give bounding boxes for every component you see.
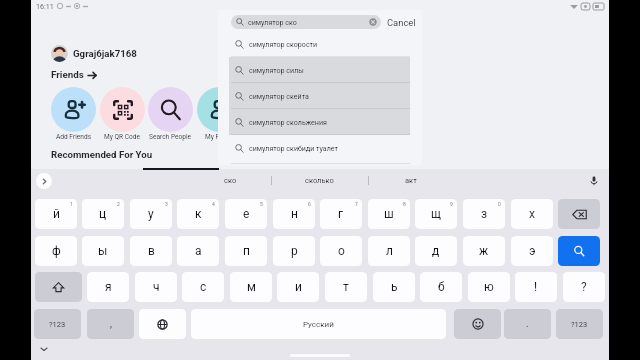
staticText: ф: [52, 244, 61, 258]
button[interactable]: а: [177, 236, 219, 266]
staticText: ш: [384, 207, 394, 221]
staticText: р: [291, 244, 298, 258]
button[interactable]: т: [325, 272, 367, 302]
staticText: симулятор силы: [249, 66, 304, 74]
staticText: 2: [117, 201, 120, 207]
button[interactable]: ,: [87, 309, 134, 339]
button[interactable]: ю: [468, 272, 510, 302]
button[interactable]: Search People: [148, 87, 193, 141]
button[interactable]: My Profile: [197, 87, 242, 141]
staticText: е: [243, 207, 250, 221]
staticText: Search People: [149, 133, 192, 141]
staticText: в: [148, 244, 155, 258]
staticText: 5: [260, 201, 263, 207]
staticText: 16:11: [36, 2, 54, 10]
button[interactable]: Emoji: [454, 309, 501, 339]
button[interactable]: акт: [376, 169, 446, 192]
staticText: ?123: [49, 320, 66, 329]
staticText: г: [338, 207, 344, 221]
staticText: 8: [403, 201, 406, 207]
button[interactable]: в: [130, 236, 172, 266]
button[interactable]: е: [225, 199, 267, 229]
staticText: симулятор скибиди туалет: [249, 144, 338, 152]
button[interactable]: симулятор скорости: [229, 31, 410, 57]
button[interactable]: Ggraj6jak7168: [51, 45, 137, 62]
button[interactable]: о: [320, 236, 362, 266]
staticText: х: [529, 207, 535, 221]
staticText: 9: [450, 201, 453, 207]
staticText: ч: [153, 280, 160, 294]
button[interactable]: к: [177, 199, 219, 229]
button[interactable]: ь: [373, 272, 415, 302]
staticText: я: [105, 280, 112, 294]
staticText: щ: [431, 207, 441, 221]
button[interactable]: симулятор скейта: [229, 83, 410, 109]
button[interactable]: я: [87, 272, 129, 302]
button[interactable]: д: [415, 236, 457, 266]
staticText: н: [291, 207, 298, 221]
button[interactable]: щ: [415, 199, 457, 229]
button[interactable]: My QR Code: [100, 87, 145, 141]
button[interactable]: й: [35, 199, 77, 229]
button[interactable]: ы: [82, 236, 124, 266]
button[interactable]: .: [504, 309, 551, 339]
button[interactable]: Hide keyboard: [36, 341, 52, 357]
button[interactable]: !: [515, 272, 557, 302]
button[interactable]: с: [182, 272, 224, 302]
staticText: и: [295, 280, 302, 294]
button[interactable]: г: [320, 199, 362, 229]
staticText: с: [200, 280, 207, 294]
staticText: у: [148, 207, 154, 221]
staticText: .: [526, 318, 529, 330]
staticText: Friends: [51, 69, 84, 80]
button[interactable]: ж: [463, 236, 505, 266]
staticText: ,: [110, 318, 112, 330]
button[interactable]: Expand toolbar: [36, 173, 52, 189]
button[interactable]: симулятор ско: [236, 15, 377, 29]
button[interactable]: ш: [368, 199, 410, 229]
button[interactable]: Voice input: [586, 173, 602, 189]
button[interactable]: ?: [563, 272, 605, 302]
button[interactable]: ?123: [556, 309, 603, 339]
button[interactable]: Русский: [191, 309, 446, 339]
staticText: т: [343, 280, 349, 294]
staticText: п: [243, 244, 250, 258]
staticText: э: [529, 244, 536, 258]
button[interactable]: и: [277, 272, 319, 302]
staticText: 6: [308, 201, 311, 207]
staticText: ж: [479, 244, 489, 258]
button[interactable]: л: [368, 236, 410, 266]
button[interactable]: ф: [35, 236, 77, 266]
button[interactable]: Change language: [139, 309, 186, 339]
button[interactable]: Cancel: [387, 13, 416, 31]
button[interactable]: х: [511, 199, 553, 229]
button[interactable]: Add Friends: [51, 87, 96, 141]
staticText: ?123: [571, 320, 588, 329]
staticText: сколько: [305, 176, 334, 185]
button[interactable]: у: [130, 199, 172, 229]
button[interactable]: ?123: [34, 309, 81, 339]
staticText: о: [338, 244, 345, 258]
button[interactable]: ц: [82, 199, 124, 229]
button[interactable]: Backspace: [558, 199, 600, 229]
button[interactable]: р: [273, 236, 315, 266]
button[interactable]: Search: [558, 236, 600, 266]
button[interactable]: Shift: [35, 272, 82, 302]
button[interactable]: э: [511, 236, 553, 266]
staticText: Add Friends: [56, 133, 92, 141]
button[interactable]: б: [420, 272, 462, 302]
button[interactable]: ско: [199, 169, 261, 192]
staticText: Русский: [303, 320, 334, 329]
button[interactable]: симулятор силы: [229, 57, 410, 83]
button[interactable]: симулятор скольжения: [229, 109, 410, 135]
staticText: а: [195, 244, 202, 258]
button[interactable]: Friends: [51, 68, 96, 81]
button[interactable]: п: [225, 236, 267, 266]
button[interactable]: з: [463, 199, 505, 229]
button[interactable]: ч: [135, 272, 177, 302]
staticText: 4: [212, 201, 215, 207]
button[interactable]: н: [273, 199, 315, 229]
button[interactable]: сколько: [279, 169, 359, 192]
button[interactable]: м: [230, 272, 272, 302]
button[interactable]: симулятор скибиди туалет: [229, 135, 410, 161]
